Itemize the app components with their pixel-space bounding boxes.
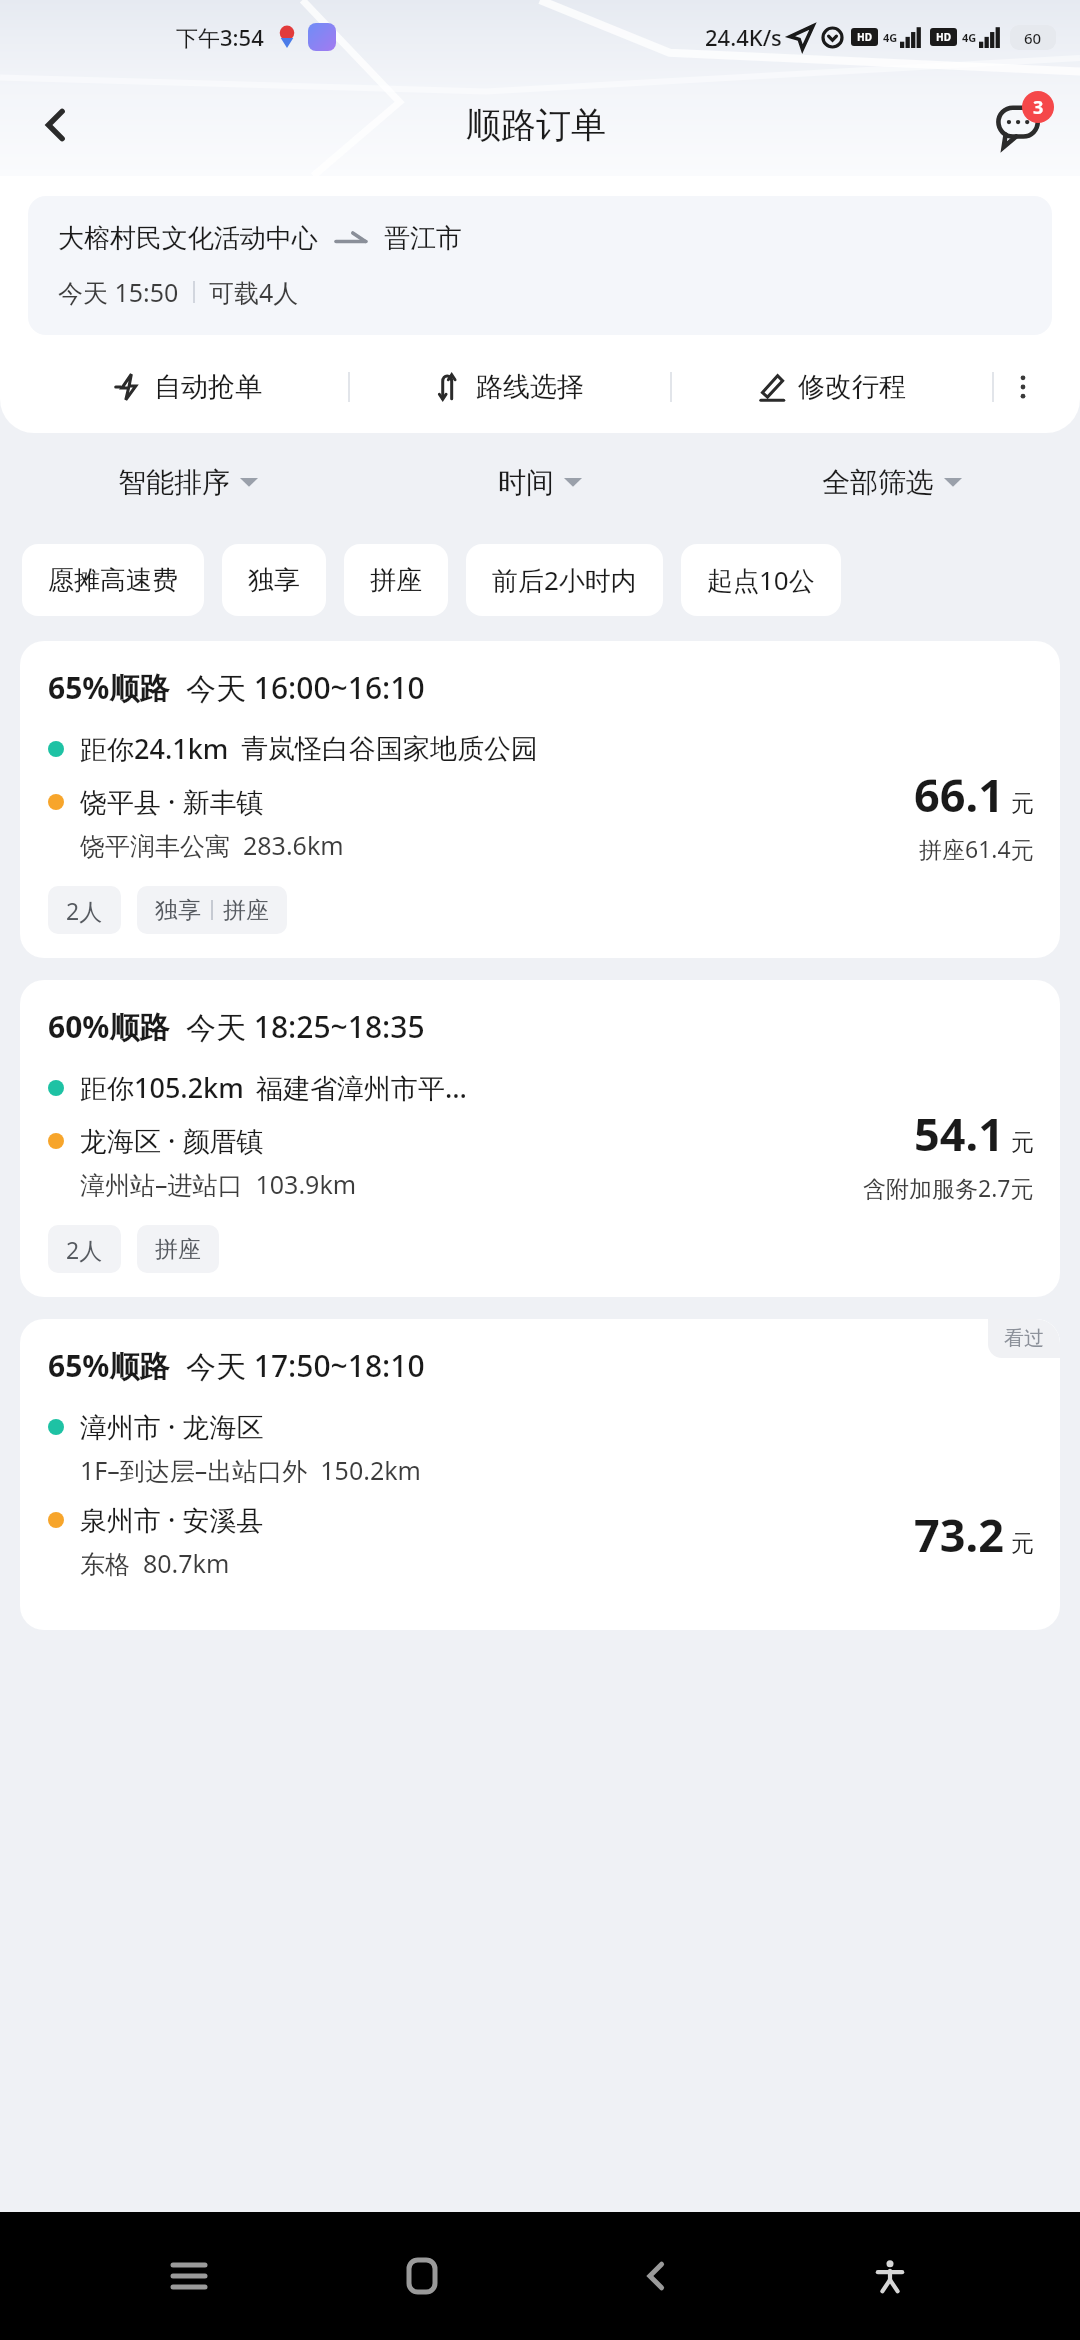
button[interactable]: 拼座 xyxy=(344,544,448,616)
staticText: 4G xyxy=(962,30,977,45)
button[interactable]: Recent apps xyxy=(145,2232,233,2320)
staticText: 元 xyxy=(1011,1128,1034,1157)
staticText: 今天 18:25~18:35 xyxy=(186,1006,425,1047)
staticText: 前后2小时内 xyxy=(492,562,637,598)
staticText: 路线选择 xyxy=(476,370,584,404)
button[interactable]: 愿摊高速费 xyxy=(22,544,204,616)
staticText: 拼座 xyxy=(370,564,422,597)
staticText: 拼座 xyxy=(223,896,269,925)
staticText: 东格 80.7km xyxy=(80,1546,230,1580)
staticText: 顺路订单 xyxy=(466,103,606,147)
staticText: 今天 16:00~16:10 xyxy=(186,667,425,708)
staticText: 漳州市 · 龙海区 xyxy=(80,1408,264,1445)
button[interactable]: 前后2小时内 xyxy=(466,544,663,616)
staticText: 距你105.2km xyxy=(80,1069,244,1106)
staticText: 福建省漳州市平… xyxy=(256,1069,467,1106)
button[interactable]: 起点10公 xyxy=(681,544,841,616)
staticText: 独享 xyxy=(155,896,201,925)
staticText: 漳州站–进站口 103.9km xyxy=(80,1167,357,1201)
staticText: 晋江市 xyxy=(384,222,462,255)
button[interactable]: More options xyxy=(994,359,1052,415)
staticText: HD xyxy=(857,30,872,44)
staticText: 66.1 xyxy=(914,764,1004,825)
staticText: 3 xyxy=(1033,95,1044,120)
staticText: 65%顺路 xyxy=(48,1345,170,1386)
staticText: 距你24.1km xyxy=(80,730,229,767)
button[interactable]: Home xyxy=(378,2232,466,2320)
button[interactable]: 独享 xyxy=(222,544,326,616)
staticText: 今天 15:50 xyxy=(58,275,179,309)
button[interactable]: Back xyxy=(26,95,86,155)
staticText: 智能排序 xyxy=(118,465,230,500)
staticText: 含附加服务2.7元 xyxy=(863,1172,1034,1203)
button[interactable]: 大榕村民文化活动中心 xyxy=(28,196,1052,335)
staticText: 龙海区 · 颜厝镇 xyxy=(80,1122,264,1159)
staticText: 起点10公 xyxy=(707,562,815,598)
button[interactable]: 智能排序 xyxy=(12,446,364,518)
staticText: 独享 xyxy=(248,564,300,597)
staticText: 2人 xyxy=(66,1234,103,1265)
staticText: 今天 17:50~18:10 xyxy=(186,1345,425,1386)
staticText: 65%顺路 xyxy=(48,667,170,708)
button[interactable]: 60%顺路 xyxy=(20,980,1060,1297)
staticText: 饶平县 · 新丰镇 xyxy=(80,783,264,820)
staticText: 自动抢单 xyxy=(154,370,262,404)
button[interactable]: 看过 xyxy=(20,1319,1060,1630)
staticText: 修改行程 xyxy=(798,370,906,404)
staticText: 时间 xyxy=(498,465,554,500)
button[interactable]: Messages xyxy=(986,91,1054,159)
staticText: 元 xyxy=(1011,1529,1034,1558)
staticText: 拼座61.4元 xyxy=(919,833,1034,864)
staticText: 下午3:54 xyxy=(176,22,264,52)
staticText: 元 xyxy=(1011,789,1034,818)
staticText: 全部筛选 xyxy=(822,465,934,500)
staticText: 大榕村民文化活动中心 xyxy=(58,222,318,255)
staticText: 愿摊高速费 xyxy=(48,564,178,597)
staticText: 60%顺路 xyxy=(48,1006,170,1047)
button[interactable]: Back xyxy=(612,2232,700,2320)
staticText: 1F–到达层–出站口外 150.2km xyxy=(80,1453,421,1487)
staticText: 看过 xyxy=(1004,1326,1044,1351)
staticText: 24.4K/s xyxy=(705,22,782,52)
staticText: 拼座 xyxy=(155,1235,201,1264)
button[interactable]: 路线选择 xyxy=(350,359,670,415)
staticText: 60 xyxy=(1024,28,1042,48)
staticText: HD xyxy=(936,30,951,44)
button[interactable]: Accessibility xyxy=(846,2232,934,2320)
button[interactable]: 时间 xyxy=(364,446,716,518)
staticText: 青岚怪白谷国家地质公园 xyxy=(241,732,538,766)
button[interactable]: 65%顺路 xyxy=(20,641,1060,958)
staticText: 可载4人 xyxy=(209,275,299,309)
staticText: 4G xyxy=(883,30,898,45)
staticText: 泉州市 · 安溪县 xyxy=(80,1501,264,1538)
button[interactable]: 修改行程 xyxy=(672,359,992,415)
staticText: 2人 xyxy=(66,895,103,926)
staticText: 54.1 xyxy=(914,1103,1004,1164)
staticText: 饶平润丰公寓 283.6km xyxy=(80,828,344,862)
staticText: 73.2 xyxy=(914,1504,1004,1565)
button[interactable]: 全部筛选 xyxy=(716,446,1068,518)
button[interactable]: 自动抢单 xyxy=(28,359,348,415)
